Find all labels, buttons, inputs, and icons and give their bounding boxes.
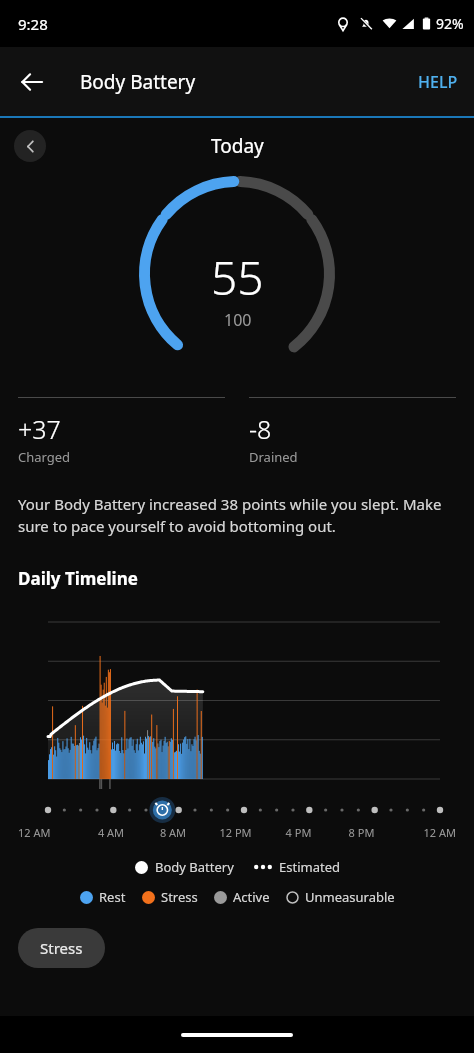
staticText: Estimated xyxy=(279,858,340,876)
staticText: 4 AM xyxy=(80,825,142,840)
staticText: 55 xyxy=(211,246,264,309)
staticText: +37 xyxy=(18,412,61,446)
staticText: Stress xyxy=(40,938,83,958)
staticText: 8 AM xyxy=(142,825,204,840)
staticText: 9:28 xyxy=(18,14,48,34)
staticText: Body Battery xyxy=(80,69,196,95)
staticText: 12 PM xyxy=(204,825,267,840)
staticText: 12 AM xyxy=(393,825,456,840)
staticText: Charged xyxy=(18,448,71,466)
staticText: Unmeasurable xyxy=(305,888,395,906)
staticText: Body Battery xyxy=(155,858,234,876)
staticText: Drained xyxy=(249,448,298,466)
staticText: Active xyxy=(233,888,270,906)
staticText: Your Body Battery increased 38 points wh… xyxy=(18,494,456,537)
button[interactable]: Previous day xyxy=(14,130,46,162)
staticText: Daily Timeline xyxy=(18,567,138,590)
button[interactable]: Back xyxy=(8,58,56,106)
staticText: 100 xyxy=(224,309,252,331)
button[interactable]: HELP xyxy=(402,59,474,105)
staticText: Today xyxy=(211,133,264,159)
staticText: 92% xyxy=(436,14,464,33)
staticText: 12 AM xyxy=(18,825,80,840)
button[interactable]: Stress xyxy=(18,928,105,968)
staticText: HELP xyxy=(418,71,458,93)
staticText: 4 PM xyxy=(267,825,330,840)
staticText: 8 PM xyxy=(330,825,393,840)
staticText: Stress xyxy=(161,888,198,906)
staticText: Rest xyxy=(99,888,126,906)
staticText: -8 xyxy=(249,412,272,446)
